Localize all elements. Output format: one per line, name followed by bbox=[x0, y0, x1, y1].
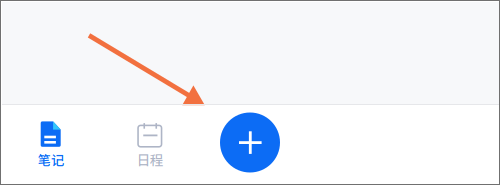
staticText: 日程 bbox=[137, 150, 163, 169]
button[interactable]: 笔记 bbox=[1, 121, 101, 185]
button[interactable]: 日程 bbox=[100, 122, 200, 185]
button[interactable]: New note bbox=[220, 112, 280, 172]
staticText: 笔记 bbox=[38, 150, 64, 169]
